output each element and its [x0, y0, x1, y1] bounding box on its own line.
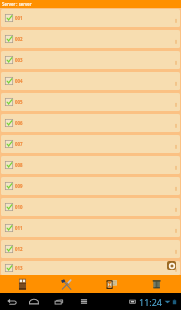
staticText: 11:24 [139, 296, 163, 308]
staticText: 011 [15, 225, 23, 231]
staticText: 012 [15, 246, 23, 252]
staticText: 013 [15, 265, 23, 271]
button[interactable]: 009 [1, 177, 180, 195]
staticText: 003 [15, 57, 23, 63]
staticText: 005 [15, 99, 23, 105]
button[interactable]: 002 [1, 30, 180, 48]
button[interactable]: Scroll [167, 261, 176, 270]
button[interactable]: 005 [1, 93, 180, 111]
button[interactable]: 008 [1, 156, 180, 174]
staticText: 007 [15, 141, 23, 147]
staticText: 010 [15, 204, 23, 210]
button[interactable]: 013 [1, 261, 180, 275]
staticText: 006 [15, 120, 23, 126]
button[interactable]: 006 [1, 114, 180, 132]
button[interactable]: Resources [134, 275, 179, 293]
button[interactable]: Server : server [0, 0, 181, 8]
button[interactable]: 003 [1, 51, 180, 69]
button[interactable]: 011 [1, 219, 180, 237]
button[interactable]: Units [44, 275, 89, 293]
button[interactable]: Buildings [0, 275, 44, 293]
button[interactable]: 004 [1, 72, 180, 90]
staticText: 008 [15, 162, 23, 168]
button[interactable]: Research [89, 275, 134, 293]
staticText: 004 [15, 78, 23, 84]
staticText: 009 [15, 183, 23, 189]
button[interactable]: Recents [52, 293, 66, 310]
button[interactable]: 012 [1, 240, 180, 258]
button[interactable]: Home [27, 293, 41, 310]
button[interactable]: 001 [1, 9, 180, 27]
staticText: Server : server [2, 1, 32, 7]
button[interactable]: Back [5, 293, 19, 310]
staticText: 002 [15, 36, 23, 42]
button[interactable]: 007 [1, 135, 180, 153]
button[interactable]: Menu [77, 293, 91, 310]
staticText: 001 [15, 15, 23, 21]
button[interactable]: 010 [1, 198, 180, 216]
